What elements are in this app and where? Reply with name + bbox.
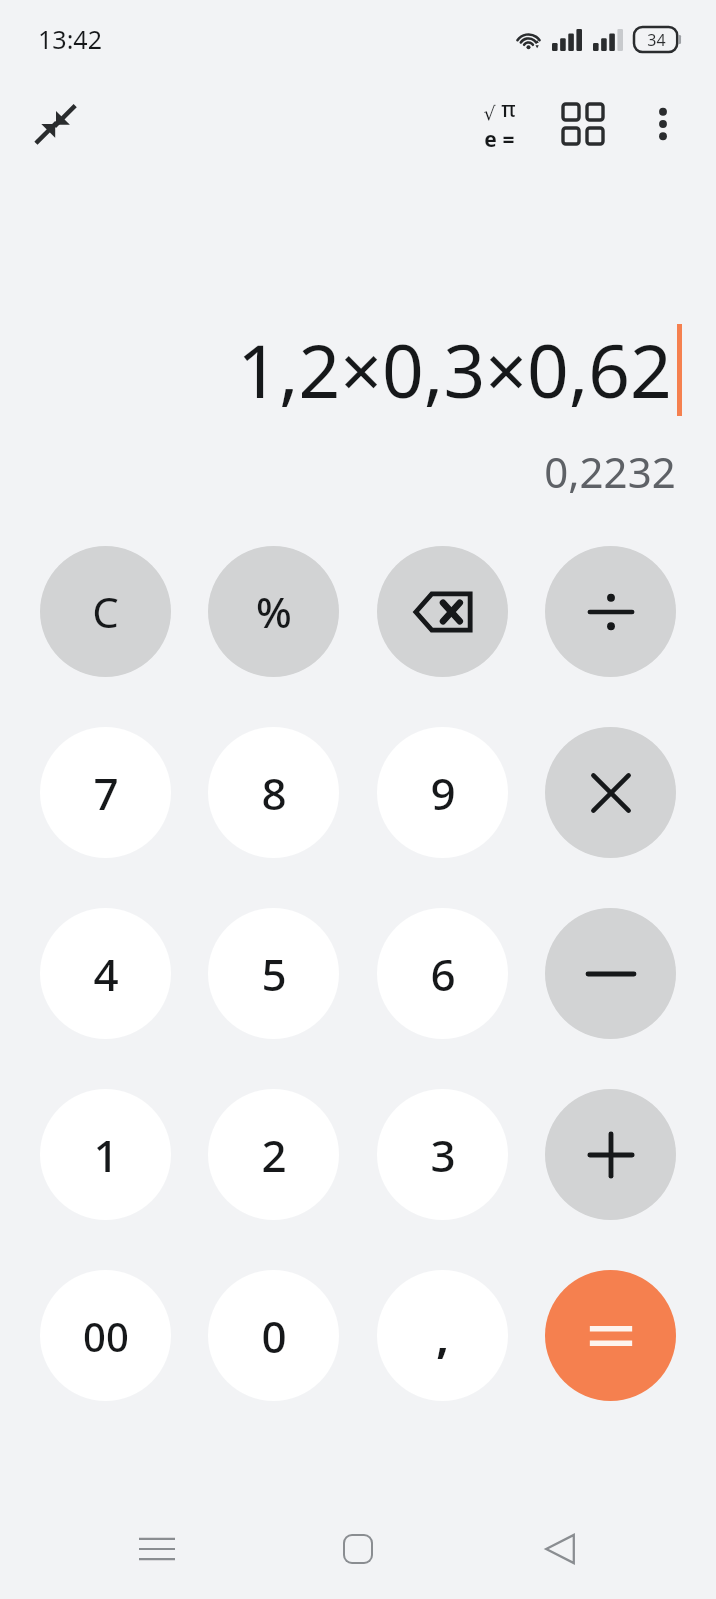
button[interactable]: Home: [313, 1504, 403, 1594]
staticText: =: [502, 125, 515, 154]
button[interactable]: ,: [377, 1270, 508, 1401]
button[interactable]: 6: [377, 908, 508, 1039]
button[interactable]: More options: [628, 89, 698, 159]
staticText: π: [501, 95, 516, 124]
button[interactable]: Multiply: [545, 727, 676, 858]
button[interactable]: 1: [40, 1089, 171, 1220]
staticText: 34: [647, 29, 666, 51]
button[interactable]: 4: [40, 908, 171, 1039]
button[interactable]: Collapse: [24, 92, 88, 156]
staticText: √: [483, 102, 496, 124]
staticText: 00: [83, 1309, 129, 1363]
button[interactable]: 8: [208, 727, 339, 858]
button[interactable]: 0: [208, 1270, 339, 1401]
button[interactable]: Equals: [545, 1270, 676, 1401]
staticText: 13:42: [38, 22, 102, 56]
button[interactable]: 2: [208, 1089, 339, 1220]
staticText: %: [256, 583, 292, 640]
staticText: ,: [436, 1306, 449, 1366]
button[interactable]: 7: [40, 727, 171, 858]
button[interactable]: %: [208, 546, 339, 677]
staticText: 0,2232: [544, 443, 676, 500]
button[interactable]: Recent apps: [112, 1504, 202, 1594]
button[interactable]: Plus: [545, 1089, 676, 1220]
button[interactable]: Scientific mode: [464, 89, 534, 159]
button[interactable]: Converters: [548, 89, 618, 159]
button[interactable]: Back: [515, 1504, 605, 1594]
staticText: C: [92, 583, 119, 640]
staticText: 7: [93, 763, 119, 823]
button[interactable]: C: [40, 546, 171, 677]
button[interactable]: 5: [208, 908, 339, 1039]
staticText: 1: [93, 1125, 119, 1185]
staticText: 6: [430, 944, 456, 1004]
staticText: e: [484, 125, 497, 154]
staticText: 4: [93, 944, 119, 1004]
staticText: 1,2×0,3×0,62: [237, 320, 672, 419]
button[interactable]: Minus: [545, 908, 676, 1039]
staticText: 0: [261, 1306, 287, 1366]
button[interactable]: 00: [40, 1270, 171, 1401]
staticText: 5: [261, 944, 287, 1004]
staticText: 2: [261, 1125, 287, 1185]
button[interactable]: Backspace: [377, 546, 508, 677]
button[interactable]: 9: [377, 727, 508, 858]
staticText: 8: [261, 763, 287, 823]
staticText: 3: [430, 1125, 456, 1185]
staticText: 9: [430, 763, 456, 823]
button[interactable]: 3: [377, 1089, 508, 1220]
button[interactable]: Divide: [545, 546, 676, 677]
